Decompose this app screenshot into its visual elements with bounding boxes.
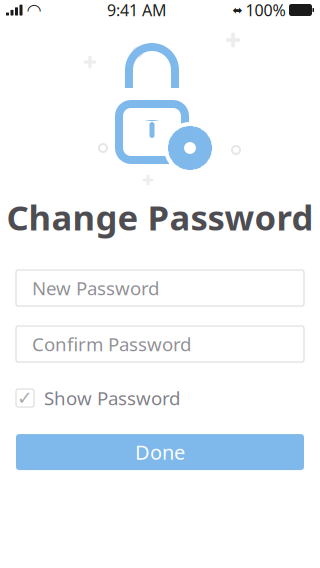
staticText: ◠ — [26, 0, 41, 20]
staticText: 9:41 AM — [107, 0, 167, 21]
staticText: Show Password — [44, 386, 180, 410]
staticText: New Password — [32, 276, 159, 300]
button[interactable]: ✓ — [16, 383, 304, 413]
staticText: Confirm Password — [32, 332, 191, 356]
staticText: ✓ — [17, 387, 33, 409]
button[interactable]: Done — [16, 434, 304, 470]
staticText: ⬌ — [232, 3, 242, 17]
button[interactable]: New Password — [16, 270, 304, 306]
staticText: 100% — [245, 0, 285, 21]
staticText: Change Password — [6, 194, 313, 240]
button[interactable]: Confirm Password — [16, 326, 304, 362]
staticText: Done — [135, 439, 185, 465]
